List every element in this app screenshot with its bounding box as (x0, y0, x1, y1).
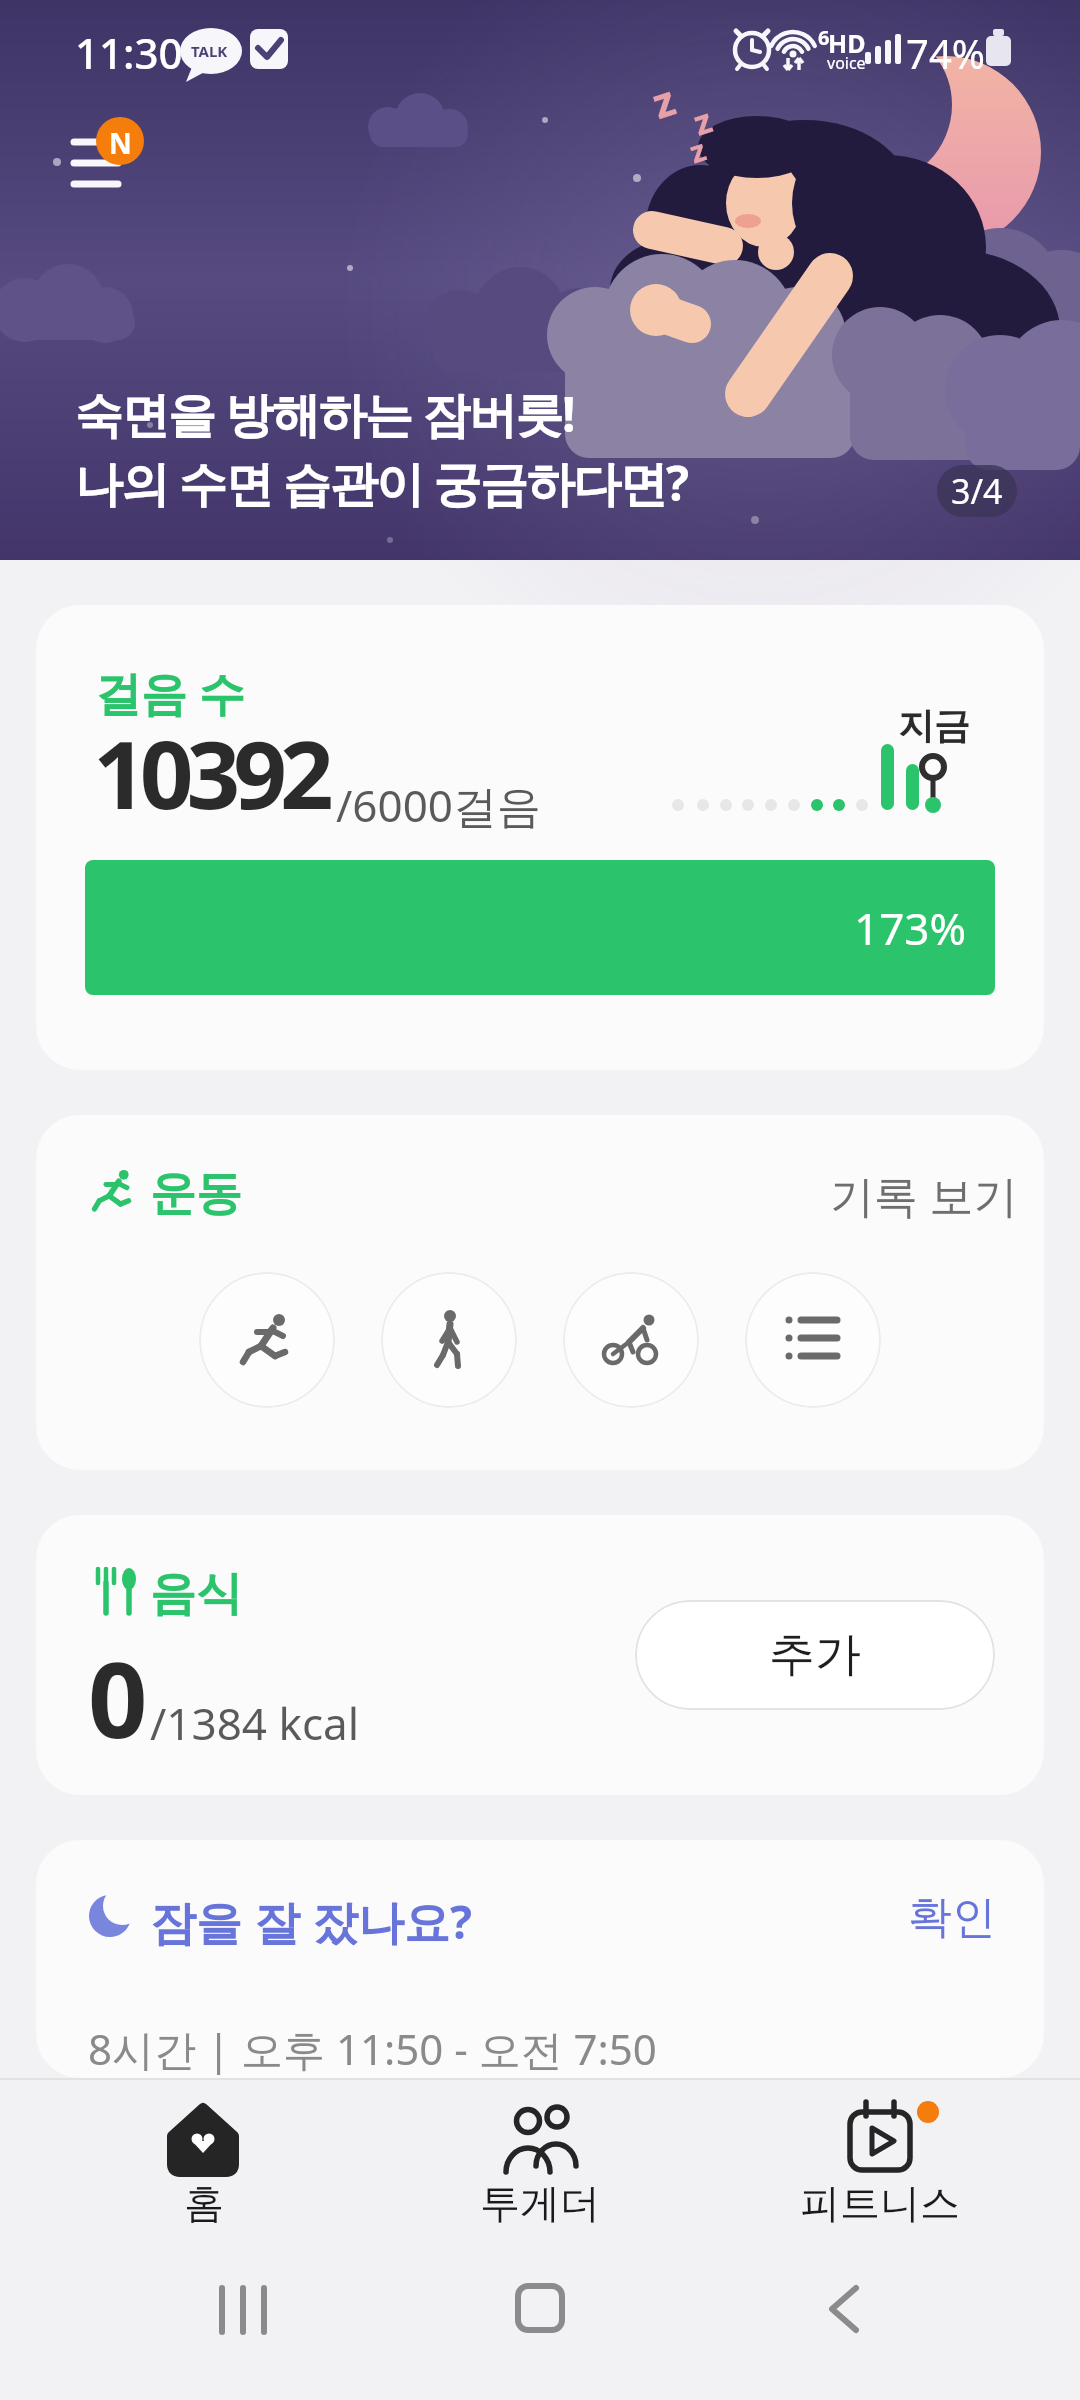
button[interactable]: 음식 (36, 1515, 1044, 1795)
button[interactable]: 운동 (36, 1115, 1044, 1470)
staticText: 운동 (150, 1165, 242, 1223)
button[interactable] (199, 1272, 335, 1408)
button[interactable] (60, 110, 160, 210)
staticText: /1384 kcal (150, 1693, 360, 1753)
button[interactable] (381, 1272, 517, 1408)
staticText: 6 (818, 24, 830, 51)
staticText: TALK (191, 41, 228, 61)
button[interactable]: 확인 (886, 1890, 996, 1950)
button[interactable] (0, 360, 1080, 560)
staticText: z (687, 96, 718, 145)
staticText: 0 (88, 1627, 148, 1769)
button[interactable]: 걸음 수 (36, 605, 1044, 1070)
button[interactable]: 기록 보기 (796, 1165, 996, 1225)
staticText: 나의 수면 습관이 궁금하다면? (75, 450, 688, 516)
staticText: 추가 (769, 1626, 861, 1684)
staticText: 홈 (184, 2178, 224, 2228)
staticText: 173% (854, 898, 967, 958)
button[interactable] (780, 2268, 910, 2358)
staticText: 확인 (908, 1890, 996, 1945)
staticText: /6000걸음 (336, 775, 542, 835)
staticText: z (645, 70, 682, 131)
staticText: 숙면을 방해하는 잠버릇! (75, 381, 574, 447)
staticText: 11:30 (75, 24, 183, 81)
staticText: 기록 보기 (830, 1165, 1018, 1225)
staticText: 8시간 | 오후 11:50 - 오전 7:50 (88, 2020, 657, 2077)
button[interactable]: 잠을 잘 잤나요? (36, 1840, 1044, 2078)
staticText: 10392 (93, 709, 327, 837)
staticText: HD (828, 26, 866, 60)
button[interactable] (475, 2268, 605, 2358)
staticText: 투게더 (480, 2178, 600, 2228)
staticText: 음식 (150, 1565, 242, 1623)
staticText: 74% (906, 26, 985, 80)
staticText: 3/4 (951, 468, 1003, 514)
staticText: 피트니스 (800, 2178, 960, 2228)
staticText: 잠을 잘 잤나요? (150, 1890, 472, 1953)
button[interactable] (815, 2078, 945, 2218)
button[interactable] (140, 2078, 270, 2218)
button[interactable] (745, 1272, 881, 1408)
button[interactable]: 추가 (635, 1600, 995, 1710)
button[interactable] (475, 2078, 605, 2218)
staticText: z (684, 129, 711, 172)
staticText: voice (827, 52, 866, 74)
staticText: 지금 (898, 703, 970, 748)
staticText: 걸음 수 (95, 661, 245, 724)
staticText: N (109, 124, 132, 162)
button[interactable] (563, 1272, 699, 1408)
button[interactable] (180, 2268, 310, 2358)
